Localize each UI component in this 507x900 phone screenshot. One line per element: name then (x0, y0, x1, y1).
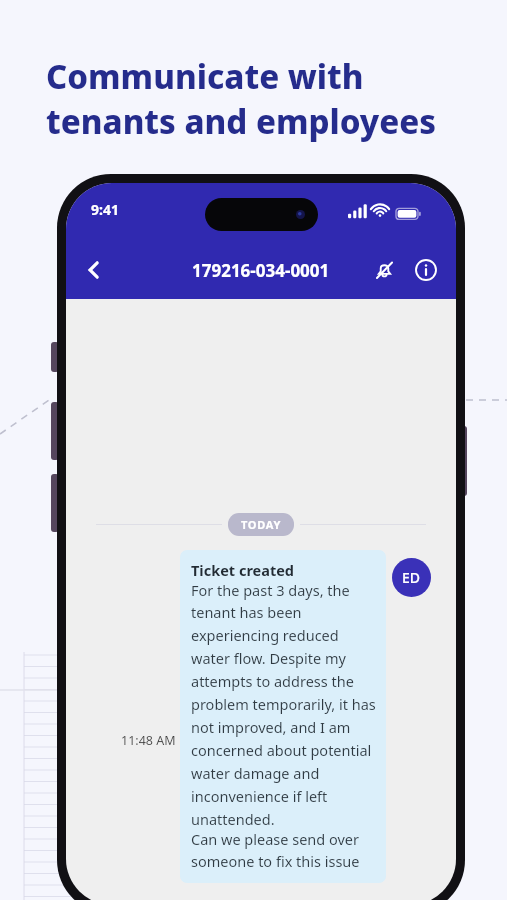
staticText: ED (402, 568, 421, 587)
staticText: 9:41 (91, 200, 119, 219)
staticText: 179216-034-0001 (192, 259, 330, 282)
button[interactable]: 179216-034-0001 (192, 259, 330, 282)
staticText: For the past 3 days, the tenant has been… (191, 580, 378, 829)
staticText: Can we please send over someone to fix t… (191, 829, 378, 871)
staticText: tenants and employees (46, 99, 437, 144)
button[interactable]: Information (406, 250, 446, 290)
staticText: TODAY (241, 517, 281, 532)
button[interactable]: Ticket created (180, 550, 386, 883)
button[interactable]: ED (392, 558, 431, 597)
staticText: 11:48 AM (121, 732, 176, 749)
button[interactable]: Mute notifications (364, 250, 404, 290)
staticText: Ticket created (191, 560, 295, 580)
staticText: Communicate with (46, 54, 364, 99)
button[interactable]: Back (74, 250, 114, 290)
